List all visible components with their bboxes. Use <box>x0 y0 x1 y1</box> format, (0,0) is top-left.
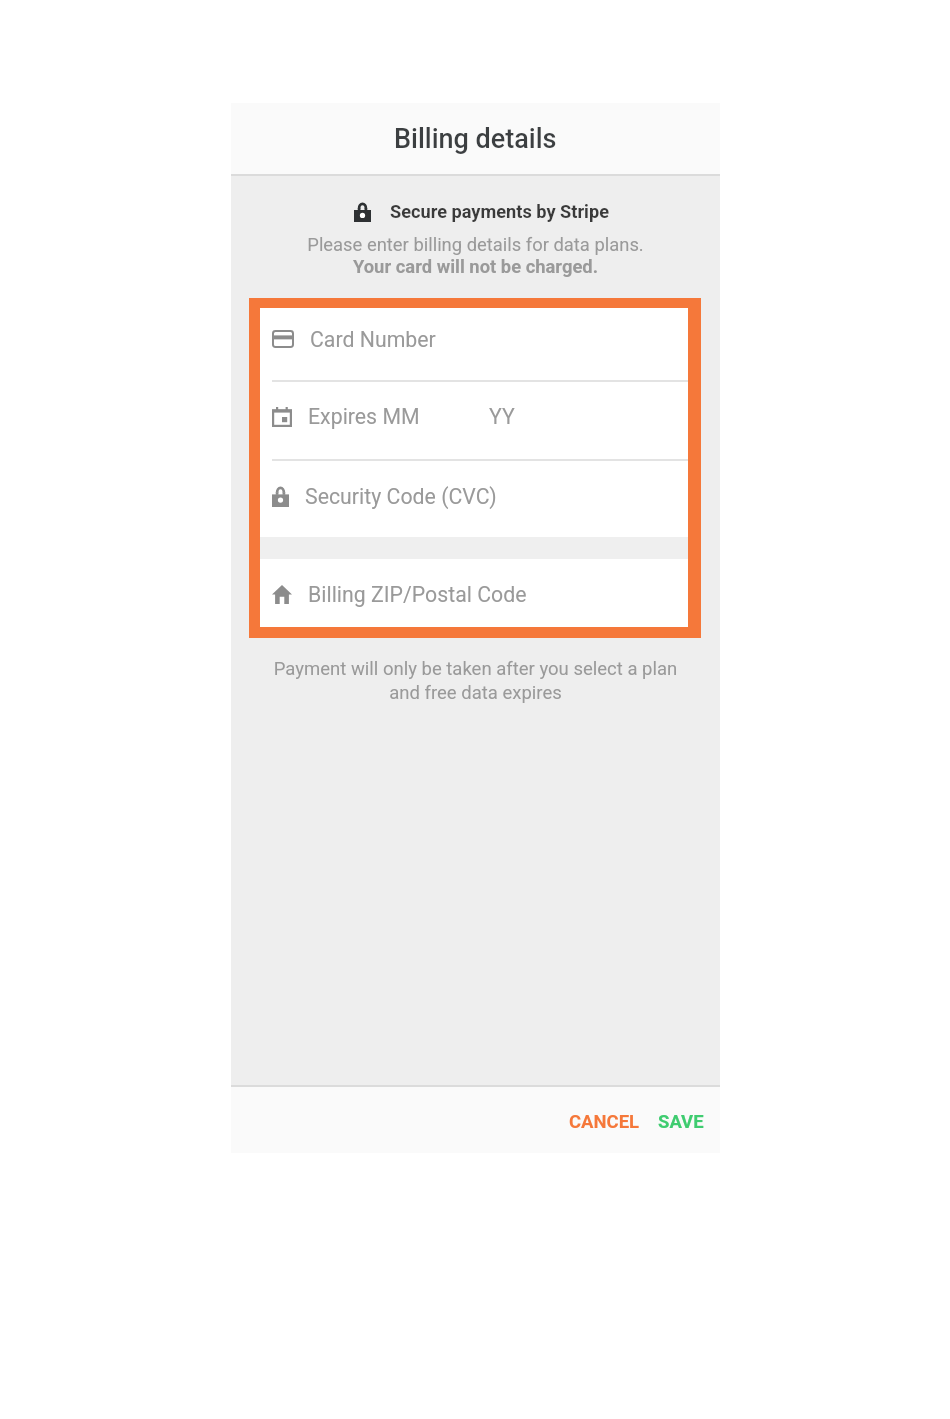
other: Secure <box>354 202 371 222</box>
staticText: Payment will only be taken after you sel… <box>267 658 684 704</box>
button[interactable]: Expires MM <box>260 382 688 459</box>
staticText: Security Code (CVC) <box>305 484 497 509</box>
button[interactable]: Security Code (CVC) <box>260 461 688 537</box>
button[interactable]: Billing ZIP/Postal Code <box>260 559 688 627</box>
staticText: Please enter billing details for data pl… <box>231 234 720 256</box>
button[interactable]: SAVE <box>646 1101 716 1143</box>
staticText: Billing ZIP/Postal Code <box>308 582 527 607</box>
staticText: Your card will not be charged. <box>231 256 720 278</box>
button[interactable]: CANCEL <box>557 1101 652 1143</box>
staticText: Secure payments by Stripe <box>390 201 609 222</box>
staticText: Expires MM <box>308 404 420 429</box>
staticText: YY <box>489 404 515 429</box>
staticText: Card Number <box>310 327 436 352</box>
staticText: SAVE <box>658 1111 704 1133</box>
button[interactable]: Card Number <box>260 308 688 380</box>
staticText: CANCEL <box>569 1111 640 1133</box>
staticText: Billing details <box>394 123 557 155</box>
